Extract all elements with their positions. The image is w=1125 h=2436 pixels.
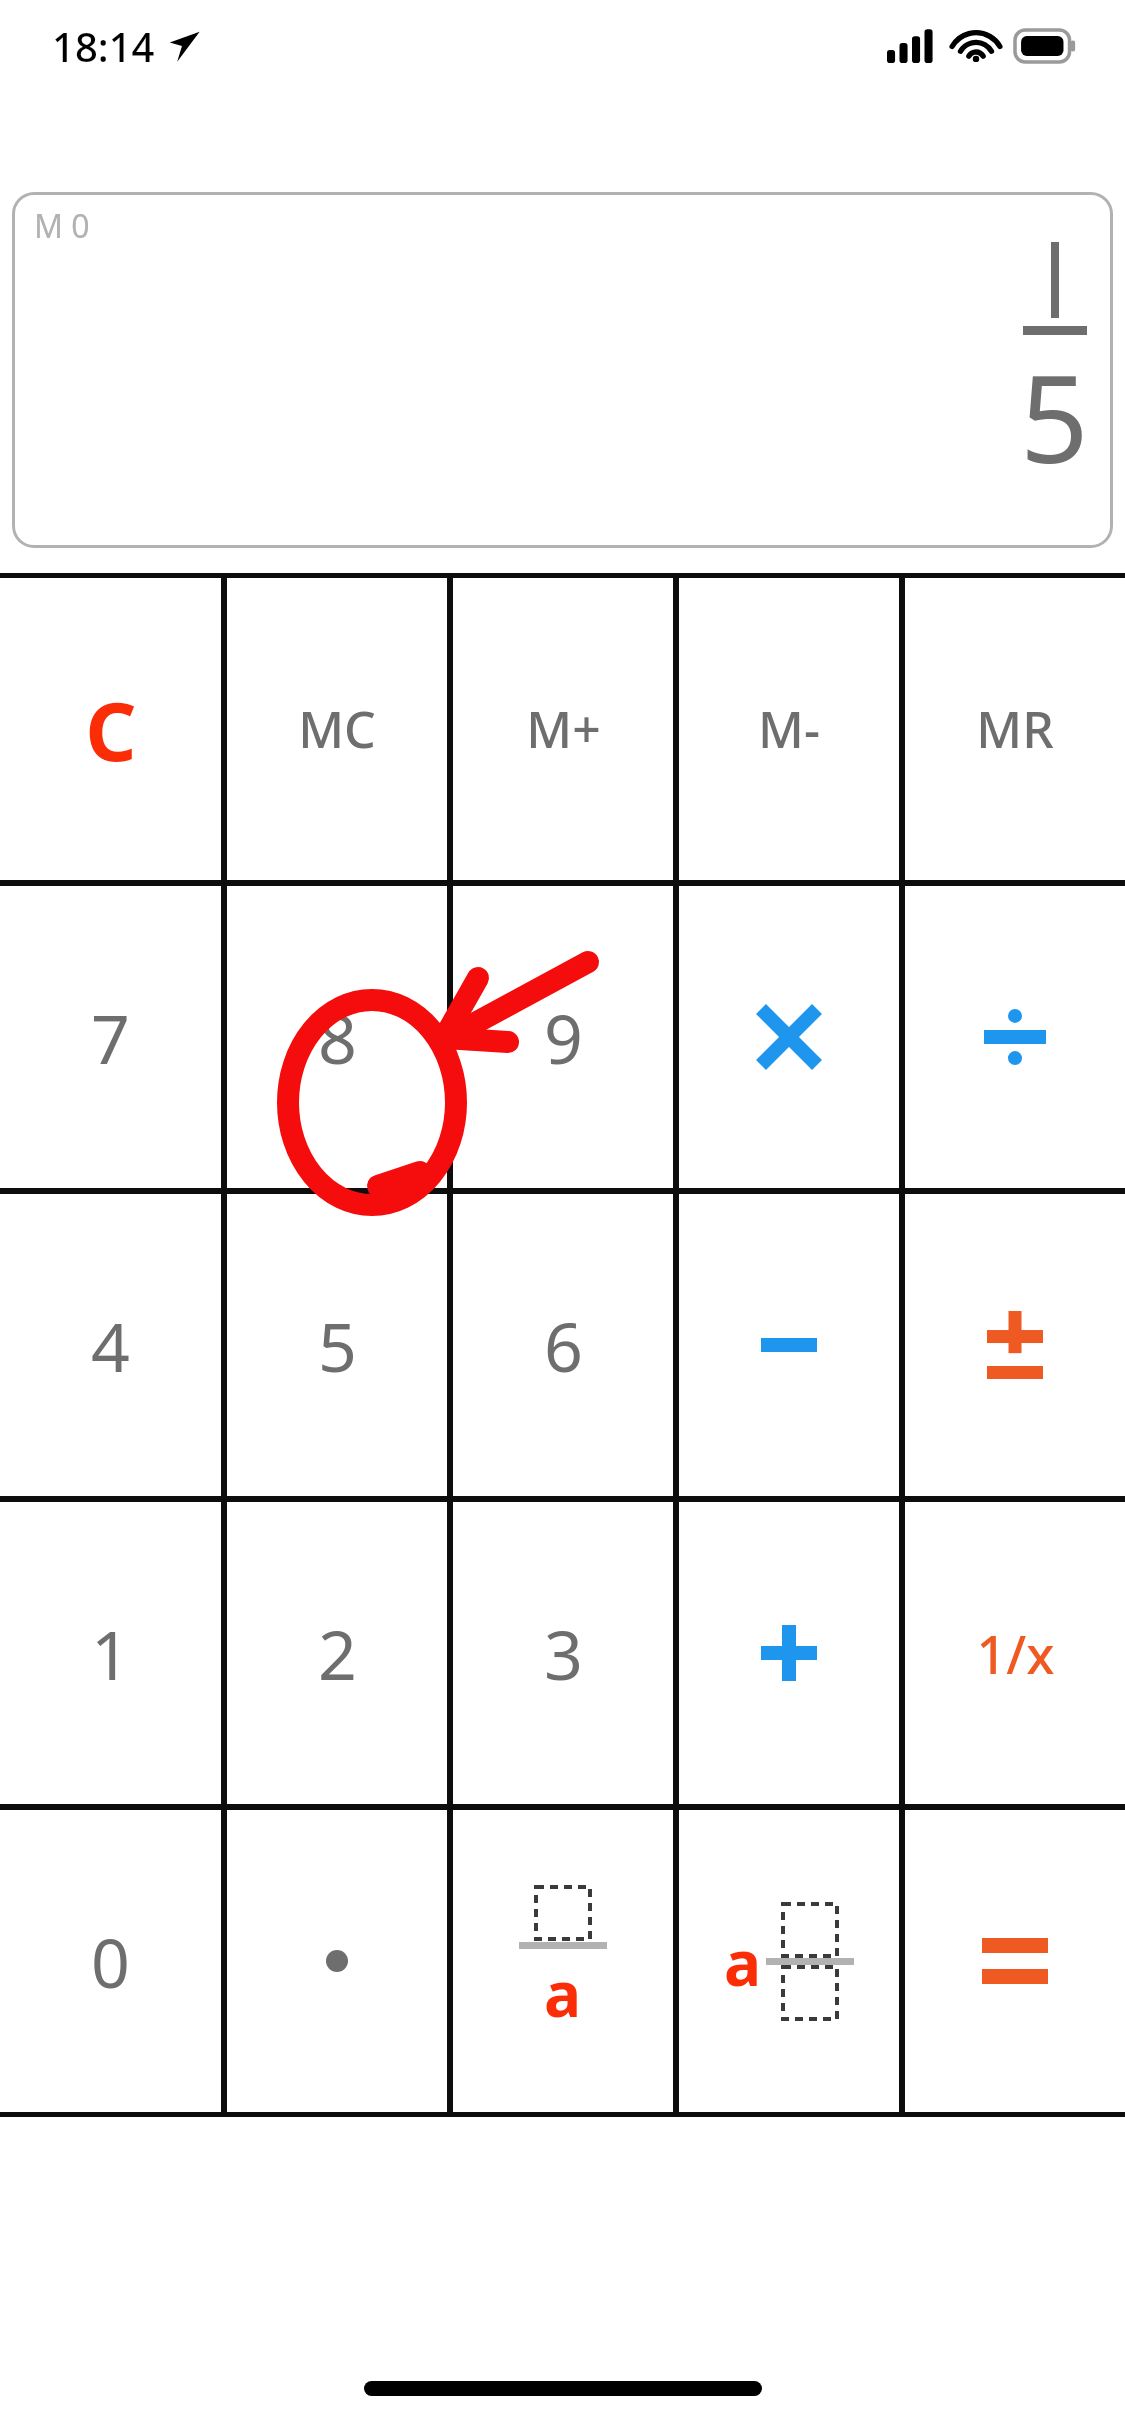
staticText: 5 <box>318 1299 357 1392</box>
staticText: 1 <box>91 1607 130 1700</box>
staticText: M+ <box>526 695 601 763</box>
button[interactable]: MR <box>905 578 1125 880</box>
button[interactable]: 0 <box>0 1810 221 2112</box>
staticText: 2 <box>318 1607 357 1700</box>
staticText: 6 <box>544 1299 583 1392</box>
button[interactable]: Plus minus <box>905 1194 1125 1496</box>
staticText: MR <box>976 695 1054 763</box>
staticText: 18:14 <box>52 19 155 73</box>
staticText: 7 <box>91 991 130 1084</box>
staticText: MC <box>298 695 376 763</box>
button[interactable]: 4 <box>0 1194 221 1496</box>
staticText: 5 <box>1020 335 1089 498</box>
button[interactable]: Mixed fraction <box>679 1810 899 2112</box>
button[interactable]: MC <box>227 578 447 880</box>
staticText: M- <box>758 695 820 763</box>
staticText: 0 <box>91 1915 130 2008</box>
button[interactable]: Equals <box>905 1810 1125 2112</box>
staticText: 4 <box>91 1299 130 1392</box>
button[interactable]: 8 <box>227 886 447 1188</box>
button[interactable]: 5 <box>227 1194 447 1496</box>
button[interactable]: Add <box>679 1502 899 1804</box>
button[interactable]: Multiply <box>679 886 899 1188</box>
button[interactable]: Subtract <box>679 1194 899 1496</box>
button[interactable]: 9 <box>453 886 673 1188</box>
staticText: 8 <box>318 991 357 1084</box>
staticText: a <box>724 1920 762 2004</box>
staticText: M 0 <box>34 204 90 248</box>
button[interactable]: Divide <box>905 886 1125 1188</box>
button[interactable]: M- <box>679 578 899 880</box>
button[interactable]: C <box>0 578 221 880</box>
button[interactable]: Fraction <box>453 1810 673 2112</box>
button[interactable]: Decimal point <box>227 1810 447 2112</box>
button[interactable]: 6 <box>453 1194 673 1496</box>
button[interactable]: 3 <box>453 1502 673 1804</box>
button[interactable]: 1/x <box>905 1502 1125 1804</box>
staticText: 9 <box>544 991 583 1084</box>
button[interactable]: M+ <box>453 578 673 880</box>
staticText: C <box>85 675 137 784</box>
staticText: a <box>544 1951 582 2035</box>
button[interactable]: 1 <box>0 1502 221 1804</box>
button[interactable]: 2 <box>227 1502 447 1804</box>
button[interactable]: 7 <box>0 886 221 1188</box>
button[interactable]: M 0 <box>12 192 1113 548</box>
staticText: 1/x <box>976 1618 1055 1689</box>
staticText: 3 <box>544 1607 583 1700</box>
